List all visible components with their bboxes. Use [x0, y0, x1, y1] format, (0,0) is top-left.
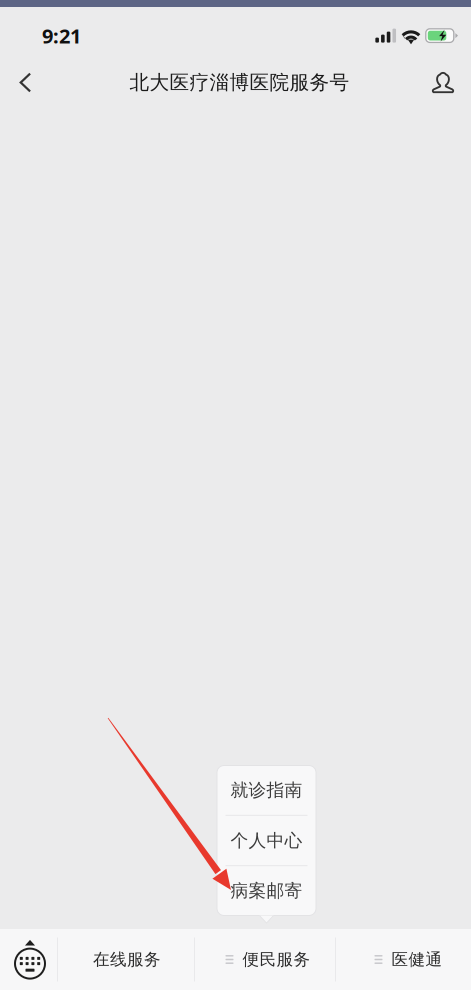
staticText: 在线服务 [93, 949, 161, 970]
button[interactable]: 便民服务 [195, 929, 335, 990]
staticText: 病案邮寄 [230, 880, 302, 902]
button[interactable]: Back [0, 56, 51, 109]
button[interactable]: 医健通 [336, 929, 471, 990]
staticText: 就诊指南 [230, 779, 302, 801]
button[interactable]: 在线服务 [58, 929, 194, 990]
button[interactable]: Keyboard [0, 929, 57, 990]
button[interactable]: 病案邮寄 [217, 866, 316, 915]
staticText: 个人中心 [230, 829, 302, 852]
staticText: 北大医疗淄博医院服务号 [129, 70, 349, 95]
button[interactable]: 个人中心 [217, 816, 316, 865]
staticText: 9:21 [42, 22, 81, 49]
staticText: 医健通 [391, 949, 442, 970]
button[interactable]: 就诊指南 [217, 765, 316, 815]
button[interactable]: Contacts [418, 56, 468, 109]
staticText: 便民服务 [242, 949, 310, 970]
